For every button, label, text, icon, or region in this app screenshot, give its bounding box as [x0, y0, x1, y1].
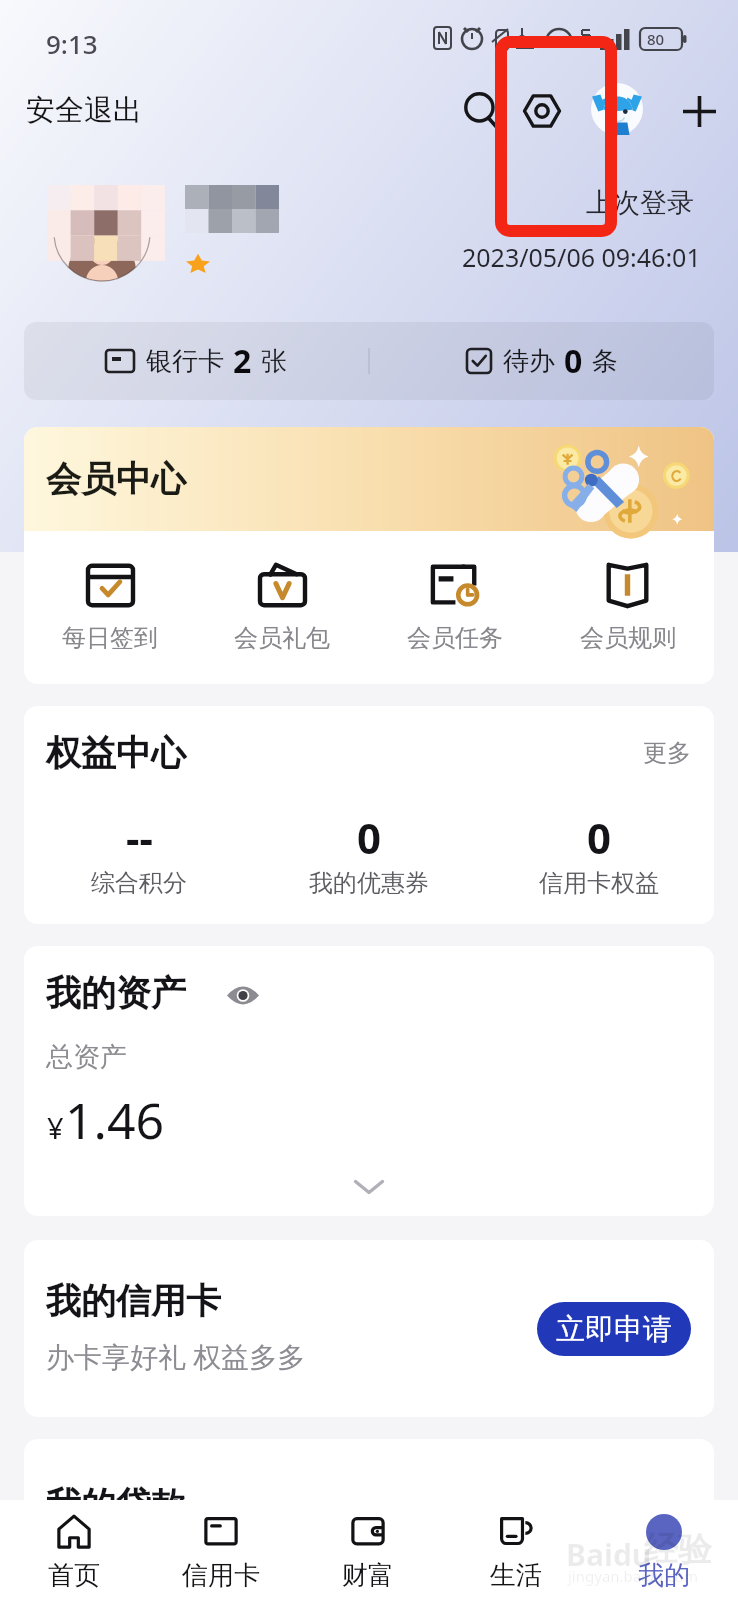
button[interactable]: --	[24, 809, 254, 898]
staticText: 我的	[638, 1559, 690, 1592]
staticText: Baidu	[566, 1534, 652, 1575]
staticText: 综合积分	[91, 868, 187, 898]
button[interactable]: Expand assets	[24, 1164, 714, 1210]
staticText: 0	[564, 339, 583, 383]
staticText: 权益中心	[46, 731, 186, 775]
button[interactable]: 我的	[590, 1500, 738, 1600]
staticText: 0	[587, 809, 612, 866]
button[interactable]: 会员礼包	[196, 531, 368, 684]
button[interactable]: 待办	[370, 322, 714, 400]
button[interactable]: 首页	[0, 1500, 147, 1600]
button[interactable]: Avatar	[46, 170, 166, 288]
staticText: 0	[357, 809, 382, 866]
button[interactable]: 每日签到	[24, 531, 196, 684]
button[interactable]: 0	[254, 809, 484, 898]
staticText: 9:13	[46, 26, 98, 61]
staticText: 会员中心	[46, 457, 186, 501]
staticText: 会员规则	[580, 623, 676, 653]
button[interactable]: 会员任务	[368, 531, 541, 684]
staticText: 1.46	[65, 1086, 165, 1154]
staticText: 2023/05/06 09:46:01	[462, 240, 701, 274]
button[interactable]: 更多	[635, 732, 699, 774]
button[interactable]: Settings	[508, 77, 576, 145]
staticText: 首页	[48, 1559, 100, 1592]
staticText: 办卡享好礼 权益多多	[46, 1337, 306, 1375]
staticText: 财富	[342, 1559, 394, 1592]
staticText: 立即申请	[556, 1311, 672, 1348]
button[interactable]: 财富	[294, 1500, 442, 1600]
button[interactable]: 生活	[442, 1500, 590, 1600]
staticText: 我的贷款	[46, 1483, 186, 1527]
staticText: 上次登录	[586, 186, 694, 220]
button[interactable]: 安全退出	[8, 82, 160, 139]
staticText: --	[126, 809, 153, 866]
staticText: 银行卡	[146, 345, 224, 378]
staticText: 更多	[643, 738, 691, 768]
staticText: 每日签到	[62, 623, 158, 653]
staticText: 我的资产	[46, 971, 186, 1015]
staticText: 生活	[490, 1559, 542, 1592]
button[interactable]: Assistant	[585, 77, 649, 141]
button[interactable]: Add	[665, 77, 733, 145]
button[interactable]: 银行卡	[24, 322, 368, 400]
button[interactable]: 立即申请	[537, 1302, 691, 1356]
staticText: 2	[233, 339, 252, 383]
staticText: 总资产	[46, 1040, 127, 1074]
button[interactable]: 信用卡	[147, 1500, 294, 1600]
staticText: 张	[261, 345, 287, 378]
staticText: 会员礼包	[234, 623, 330, 653]
button[interactable]: 0	[484, 809, 714, 898]
staticText: 信用卡权益	[539, 868, 659, 898]
button[interactable]: Toggle balance visibility	[220, 972, 266, 1018]
staticText: 我的优惠券	[309, 868, 429, 898]
staticText: 待办	[503, 345, 555, 378]
button[interactable]: 会员中心	[24, 427, 714, 531]
staticText: 会员任务	[407, 623, 503, 653]
staticText: 80	[647, 29, 665, 49]
staticText: 信用卡	[182, 1559, 260, 1592]
staticText: 安全退出	[26, 92, 142, 129]
staticText: 经验	[644, 1528, 712, 1571]
button[interactable]: Search	[447, 77, 515, 145]
button[interactable]: 我的贷款	[24, 1439, 714, 1600]
staticText: jingyan.baidu.com	[568, 1566, 698, 1586]
staticText: ¥	[47, 1108, 64, 1147]
staticText: 我的信用卡	[46, 1279, 221, 1323]
staticText: 条	[592, 345, 618, 378]
button[interactable]: 会员规则	[541, 531, 714, 684]
